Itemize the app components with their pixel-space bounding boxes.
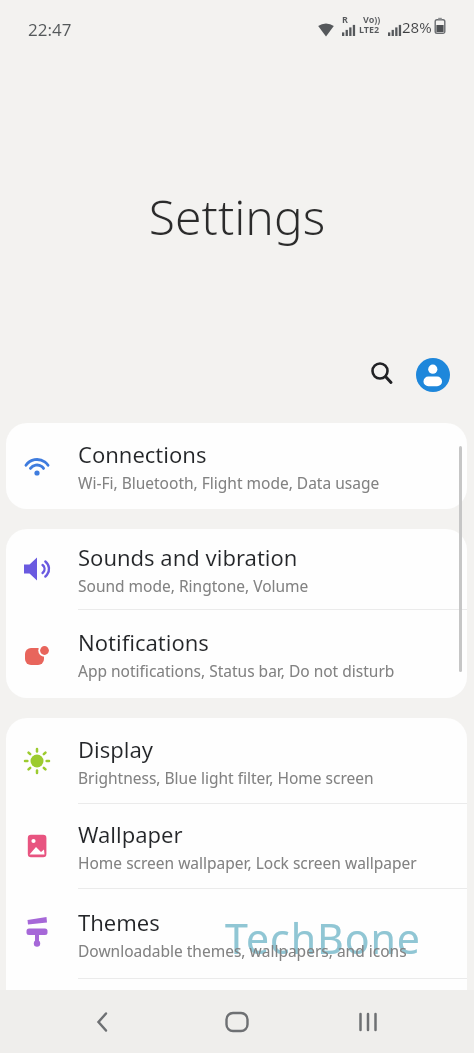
staticText: Notifications (78, 627, 209, 657)
button[interactable] (344, 998, 392, 1046)
staticText: TechBone (225, 910, 421, 966)
staticText: 22:47 (28, 18, 72, 41)
button[interactable]: Connections (6, 423, 467, 509)
button[interactable]: Themes (6, 889, 467, 978)
button[interactable] (79, 998, 127, 1046)
staticText: Sound mode, Ringtone, Volume (78, 575, 309, 596)
staticText: Downloadable themes, wallpapers, and ico… (78, 940, 407, 961)
staticText: Display (78, 734, 154, 764)
staticText: Settings (0, 184, 474, 249)
staticText: R (342, 13, 348, 25)
staticText: Themes (78, 907, 160, 937)
staticText: Sounds and vibration (78, 542, 298, 572)
staticText: Wi-Fi, Bluetooth, Flight mode, Data usag… (78, 472, 380, 493)
staticText: Home screen wallpaper, Lock screen wallp… (78, 852, 417, 873)
button[interactable]: Wallpaper (6, 804, 467, 888)
staticText: Vo)) (363, 13, 381, 25)
staticText: Brightness, Blue light filter, Home scre… (78, 767, 374, 788)
staticText: LTE2 (359, 23, 380, 35)
staticText: Wallpaper (78, 819, 183, 849)
button[interactable] (361, 353, 403, 395)
button[interactable] (213, 998, 261, 1046)
button[interactable]: Display (6, 718, 467, 803)
staticText: 28% (402, 17, 432, 37)
button[interactable]: Notifications (6, 610, 467, 698)
button[interactable] (416, 358, 450, 392)
staticText: App notifications, Status bar, Do not di… (78, 660, 395, 681)
button[interactable]: Sounds and vibration (6, 529, 467, 609)
staticText: Connections (78, 439, 207, 469)
